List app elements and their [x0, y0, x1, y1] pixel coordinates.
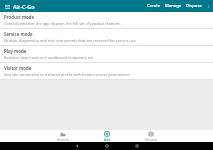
staticText: Controls whether the app displays the fu…: [4, 21, 121, 26]
button[interactable]: Dispose: [184, 1, 204, 11]
button[interactable]: Back: [73, 142, 81, 150]
button[interactable]: Service mode: [0, 29, 213, 45]
staticText: Dispose: [186, 3, 202, 9]
staticText: Alt-C-Go: [13, 3, 35, 10]
button[interactable]: Visitor mode: [0, 63, 213, 79]
staticText: Product mode: [4, 14, 35, 20]
button[interactable]: Navigation menu: [3, 2, 12, 11]
button[interactable]: Records: [50, 130, 76, 142]
staticText: Settings: [145, 138, 158, 141]
staticText: Visitor mode: [4, 65, 32, 71]
staticText: Records: [57, 138, 69, 141]
button[interactable]: Product mode: [0, 12, 213, 28]
staticText: Enables diagnostics and test instruments…: [4, 38, 137, 43]
button[interactable]: Settings: [138, 130, 164, 142]
staticText: Create: [147, 3, 161, 9]
staticText: Service mode: [4, 31, 33, 37]
button[interactable]: Add: [94, 130, 120, 142]
button[interactable]: Recent apps: [133, 142, 141, 150]
staticText: Manage: [165, 3, 182, 9]
staticText: Play mode: [4, 48, 27, 54]
button[interactable]: Play mode: [0, 46, 213, 62]
button[interactable]: Create: [145, 1, 163, 11]
button[interactable]: Home: [103, 142, 111, 150]
staticText: Sets the connection to a shared profile …: [4, 72, 131, 77]
staticText: Add: [104, 138, 111, 141]
button[interactable]: Manage: [163, 1, 184, 11]
button[interactable]: More options: [204, 2, 212, 10]
staticText: Restricts data input to a sandboxed temp…: [4, 55, 95, 60]
